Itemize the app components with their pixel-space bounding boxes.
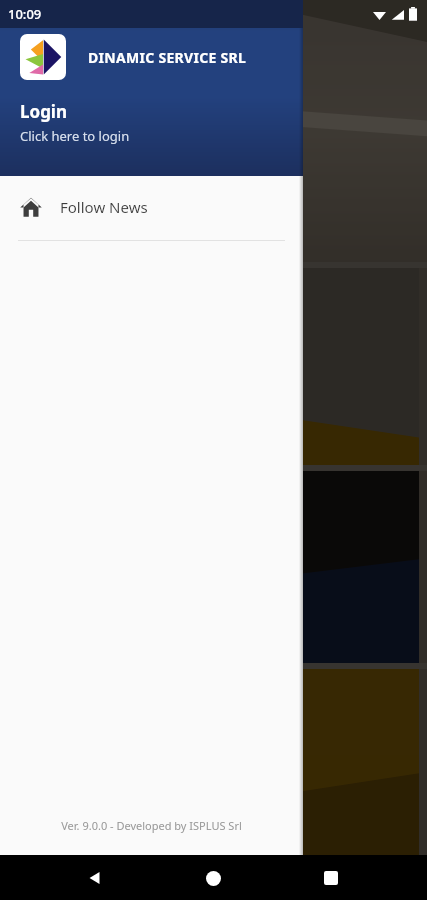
button[interactable]: Recent apps xyxy=(309,856,353,900)
staticText: 10:09 xyxy=(8,5,42,23)
button[interactable]: Login xyxy=(0,98,303,151)
button[interactable]: Home xyxy=(191,856,235,900)
button[interactable]: Follow News xyxy=(0,182,303,232)
staticText: Click here to login xyxy=(20,127,130,145)
other: App logo xyxy=(20,34,66,80)
staticText: DINAMIC SERVICE SRL xyxy=(88,48,247,67)
staticText: Ver. 9.0.0 - Developed by ISPLUS Srl xyxy=(0,818,303,833)
button[interactable]: Back xyxy=(73,856,117,900)
staticText: Follow News xyxy=(60,197,148,217)
staticText: Login xyxy=(20,100,68,123)
staticText: Orari xyxy=(26,822,67,845)
button[interactable]: Servizi xyxy=(8,471,419,663)
button[interactable]: Orari xyxy=(8,669,419,855)
button[interactable]: Magazzino xyxy=(8,268,419,465)
